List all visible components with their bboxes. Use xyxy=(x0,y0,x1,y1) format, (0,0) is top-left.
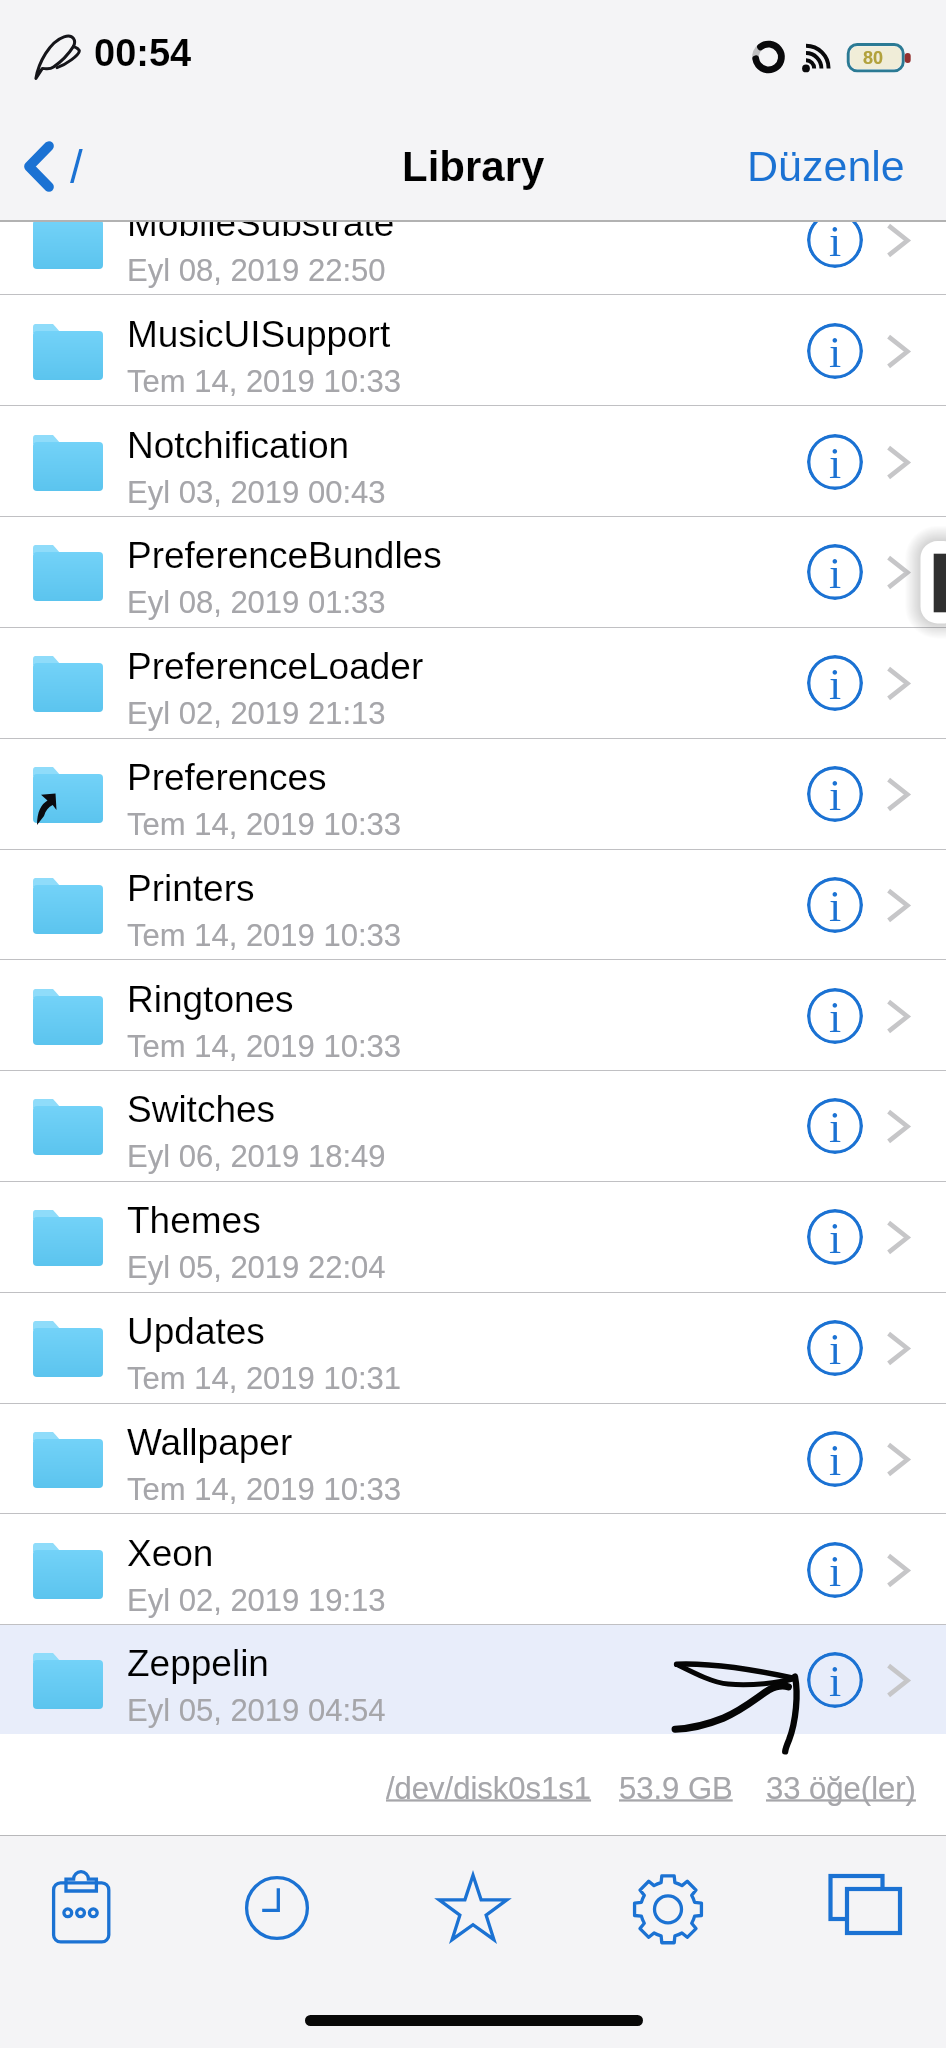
button[interactable]: Recent xyxy=(230,1861,324,1955)
button[interactable]: Zeppelin xyxy=(0,1625,946,1734)
staticText: Eyl 06, 2019 18:49 xyxy=(127,1139,386,1174)
button[interactable]: Info xyxy=(807,988,863,1044)
staticText: Eyl 08, 2019 22:50 xyxy=(127,253,386,288)
staticText: MusicUISupport xyxy=(127,314,391,355)
staticText: 00:54 xyxy=(94,32,192,74)
staticText: Tem 14, 2019 10:33 xyxy=(127,807,402,842)
button[interactable]: Info xyxy=(807,434,863,490)
button[interactable]: Settings xyxy=(621,1861,715,1955)
staticText: Printers xyxy=(127,868,255,909)
staticText: Eyl 05, 2019 04:54 xyxy=(127,1693,386,1728)
button[interactable]: MusicUISupport xyxy=(0,296,946,407)
button[interactable]: Wallpaper xyxy=(0,1404,946,1515)
button[interactable]: MobileSubstrate xyxy=(0,222,946,296)
staticText: i xyxy=(829,1103,842,1152)
staticText: i xyxy=(829,439,842,488)
staticText: Tem 14, 2019 10:33 xyxy=(127,918,402,953)
button[interactable]: Info xyxy=(807,544,863,600)
staticText: Library xyxy=(402,143,545,190)
button[interactable]: Preferences xyxy=(0,739,946,850)
button[interactable]: Info xyxy=(807,877,863,933)
button[interactable]: PreferenceBundles xyxy=(0,517,946,628)
staticText: PreferenceLoader xyxy=(127,646,424,687)
staticText: Eyl 02, 2019 21:13 xyxy=(127,696,386,731)
staticText: Zeppelin xyxy=(127,1643,269,1684)
staticText: Xeon xyxy=(127,1533,214,1574)
staticText: Switches xyxy=(127,1089,276,1130)
staticText: Düzenle xyxy=(747,142,905,190)
button[interactable]: Info xyxy=(807,1542,863,1598)
button[interactable]: Info xyxy=(807,323,863,379)
button[interactable]: Back to / xyxy=(0,119,107,214)
staticText: i xyxy=(829,1547,842,1596)
button[interactable]: Ringtones xyxy=(0,961,946,1072)
staticText: i xyxy=(829,1657,842,1706)
button[interactable]: Updates xyxy=(0,1293,946,1404)
staticText: Eyl 08, 2019 01:33 xyxy=(127,585,386,620)
button[interactable]: Info xyxy=(807,1652,863,1708)
button[interactable]: Clipboard xyxy=(34,1861,128,1955)
button[interactable]: Info xyxy=(807,1320,863,1376)
staticText: i xyxy=(829,1325,842,1374)
staticText: i xyxy=(829,771,842,820)
staticText: i xyxy=(829,549,842,598)
staticText: Tem 14, 2019 10:33 xyxy=(127,364,402,399)
staticText: Ringtones xyxy=(127,979,294,1020)
staticText: Wallpaper xyxy=(127,1422,293,1463)
staticText: Preferences xyxy=(127,757,327,798)
button[interactable]: Printers xyxy=(0,850,946,961)
button[interactable]: Xeon xyxy=(0,1515,946,1626)
staticText: Eyl 02, 2019 19:13 xyxy=(127,1583,386,1618)
staticText: PreferenceBundles xyxy=(127,535,442,576)
staticText: / xyxy=(70,141,83,192)
staticText: Notchification xyxy=(127,425,350,466)
staticText: i xyxy=(829,328,842,377)
staticText: Updates xyxy=(127,1311,265,1352)
button[interactable]: Switches xyxy=(0,1071,946,1182)
staticText: /dev/disk0s1s1 xyxy=(386,1771,592,1806)
button[interactable]: PreferenceLoader xyxy=(0,628,946,739)
staticText: i xyxy=(829,1214,842,1263)
button[interactable]: Windows xyxy=(817,1861,911,1955)
staticText: MobileSubstrate xyxy=(127,222,395,244)
staticText: i xyxy=(829,882,842,931)
button[interactable]: Info xyxy=(807,222,863,268)
button[interactable]: Info xyxy=(807,1431,863,1487)
button[interactable]: Notchification xyxy=(0,407,946,518)
button[interactable]: Themes xyxy=(0,1182,946,1293)
staticText: Tem 14, 2019 10:31 xyxy=(127,1361,402,1396)
button[interactable]: Info xyxy=(807,766,863,822)
staticText: i xyxy=(829,660,842,709)
button[interactable]: Düzenle xyxy=(711,120,946,212)
button[interactable]: Favorites xyxy=(426,1861,520,1955)
staticText: i xyxy=(829,1436,842,1485)
staticText: i xyxy=(829,222,842,266)
staticText: Tem 14, 2019 10:33 xyxy=(127,1029,402,1064)
staticText: Themes xyxy=(127,1200,261,1241)
staticText: Eyl 05, 2019 22:04 xyxy=(127,1250,386,1285)
staticText: 80 xyxy=(863,48,884,68)
button[interactable]: Info xyxy=(807,1209,863,1265)
staticText: 53.9 GB xyxy=(619,1771,733,1806)
staticText: Tem 14, 2019 10:33 xyxy=(127,1472,402,1507)
staticText: 33 öğe(ler) xyxy=(766,1771,916,1806)
button[interactable]: Info xyxy=(807,1098,863,1154)
staticText: Eyl 03, 2019 00:43 xyxy=(127,475,386,510)
staticText: i xyxy=(829,993,842,1042)
button[interactable]: Info xyxy=(807,655,863,711)
